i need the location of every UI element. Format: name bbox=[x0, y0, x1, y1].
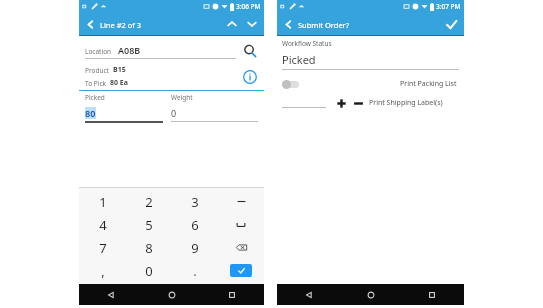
button[interactable]: 0 bbox=[171, 107, 258, 122]
button[interactable]: Next line bbox=[244, 16, 260, 32]
staticText: Line #2 of 3 bbox=[100, 20, 142, 30]
staticText: 6 bbox=[191, 216, 199, 234]
button[interactable]: Information bbox=[240, 67, 260, 87]
staticText: 9 bbox=[191, 239, 199, 257]
button[interactable]: 6 bbox=[172, 213, 218, 236]
staticText: Submit Order? bbox=[298, 20, 349, 30]
button[interactable]: Home bbox=[365, 289, 377, 301]
button[interactable]: Print Packing List toggle bbox=[282, 80, 300, 89]
staticText: 8 bbox=[145, 239, 153, 257]
button[interactable]: Picked bbox=[282, 52, 459, 70]
staticText: 2 bbox=[145, 193, 153, 211]
button[interactable]: Back bbox=[105, 289, 117, 301]
staticText: , bbox=[101, 262, 105, 280]
staticText: 0 bbox=[145, 262, 153, 280]
button[interactable]: Line #2 of 3 bbox=[83, 19, 144, 30]
staticText: 3:07 PM bbox=[436, 2, 461, 11]
button[interactable]: Confirm bbox=[442, 15, 460, 33]
button[interactable]: 0 bbox=[126, 259, 172, 282]
staticText: . bbox=[193, 262, 197, 280]
staticText: 4 bbox=[99, 216, 107, 234]
button[interactable]: 8 bbox=[126, 236, 172, 259]
staticText: 3 bbox=[191, 193, 199, 211]
button[interactable]: Submit Order? bbox=[281, 19, 351, 30]
staticText: A08B bbox=[118, 44, 141, 56]
staticText: Workflow Status bbox=[282, 39, 332, 48]
button[interactable]: , bbox=[79, 259, 126, 282]
button[interactable]: Home bbox=[166, 289, 178, 301]
button[interactable]: 1 bbox=[79, 190, 126, 213]
staticText: B15 bbox=[113, 65, 126, 75]
button[interactable]: Recent apps bbox=[226, 289, 238, 301]
staticText: To Pick bbox=[85, 79, 106, 88]
button[interactable] bbox=[282, 98, 326, 108]
staticText: Picked bbox=[282, 52, 316, 67]
button[interactable]: 4 bbox=[79, 213, 126, 236]
button[interactable]: 2 bbox=[126, 190, 172, 213]
staticText: 5 bbox=[145, 216, 153, 234]
staticText: Picked bbox=[85, 93, 171, 102]
button[interactable]: minus bbox=[218, 190, 264, 213]
staticText: 80 bbox=[85, 107, 96, 119]
button[interactable]: . bbox=[172, 259, 218, 282]
button[interactable]: space bbox=[218, 213, 264, 236]
button[interactable]: 9 bbox=[172, 236, 218, 259]
button[interactable]: ok bbox=[218, 259, 264, 282]
button[interactable]: Decrease bbox=[351, 96, 365, 110]
staticText: 0 bbox=[171, 107, 177, 119]
staticText: Product bbox=[85, 66, 109, 75]
staticText: Weight bbox=[171, 93, 258, 102]
staticText: 80 Ea bbox=[110, 78, 128, 88]
button[interactable]: Back bbox=[303, 289, 315, 301]
button[interactable]: Previous line bbox=[224, 16, 240, 32]
button[interactable]: 80 bbox=[85, 107, 163, 123]
button[interactable]: Search bbox=[240, 41, 260, 61]
button[interactable]: del bbox=[218, 236, 264, 259]
button[interactable]: Recent apps bbox=[426, 289, 438, 301]
button[interactable]: Print Packing List bbox=[400, 79, 457, 89]
button[interactable]: Print Shipping Label(s) bbox=[369, 98, 443, 108]
button[interactable]: Increase bbox=[334, 96, 348, 110]
button[interactable]: 3 bbox=[172, 190, 218, 213]
staticText: 1 bbox=[99, 193, 107, 211]
button[interactable]: 7 bbox=[79, 236, 126, 259]
staticText: 3:06 PM bbox=[236, 2, 261, 11]
staticText: Location bbox=[85, 47, 112, 56]
staticText: 7 bbox=[99, 239, 107, 257]
button[interactable]: 5 bbox=[126, 213, 172, 236]
